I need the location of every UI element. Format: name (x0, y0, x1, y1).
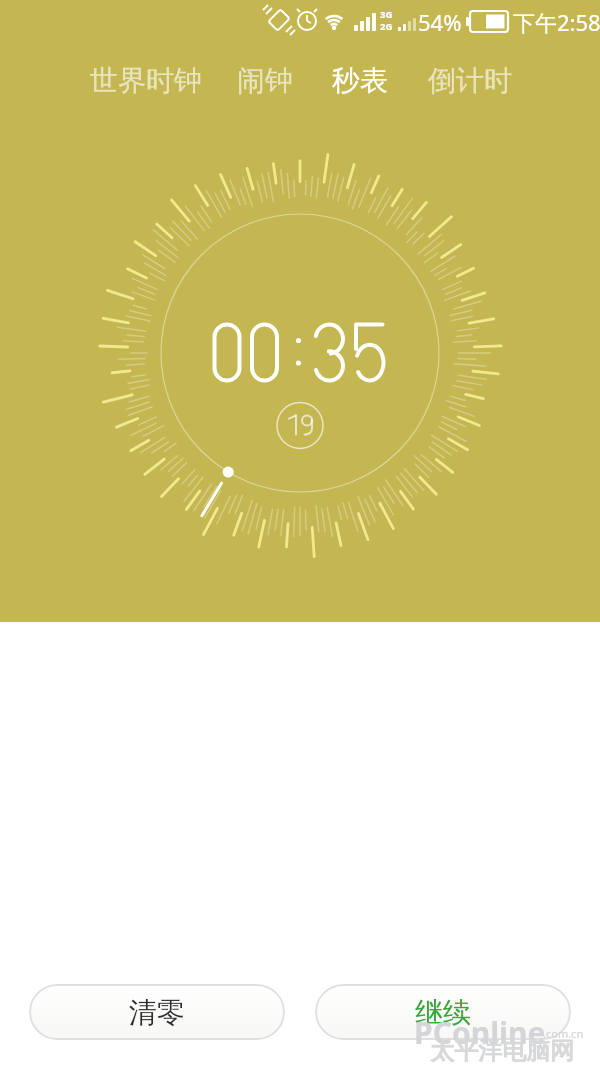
staticText: 秒表 (332, 63, 388, 98)
button[interactable]: 倒计时 (418, 55, 522, 105)
button[interactable]: 继续 (315, 984, 571, 1040)
staticText: 世界时钟 (90, 63, 202, 98)
staticText: 太平洋电脑网 (430, 1036, 574, 1066)
button[interactable]: 世界时钟 (80, 55, 212, 105)
staticText: 2G (380, 20, 393, 33)
staticText: 倒计时 (428, 63, 512, 98)
staticText: .com.cn (543, 1026, 584, 1041)
button[interactable]: 闹钟 (227, 55, 303, 105)
staticText: 54% (418, 7, 462, 37)
button[interactable]: 清零 (29, 984, 285, 1040)
staticText: 3G (380, 8, 393, 21)
staticText: PConline (414, 1012, 546, 1053)
button[interactable]: 秒表 (322, 55, 398, 105)
staticText: 清零 (129, 995, 185, 1030)
staticText: 闹钟 (237, 63, 293, 98)
staticText: 下午2:58 (513, 7, 600, 37)
staticText: 继续 (415, 995, 471, 1030)
